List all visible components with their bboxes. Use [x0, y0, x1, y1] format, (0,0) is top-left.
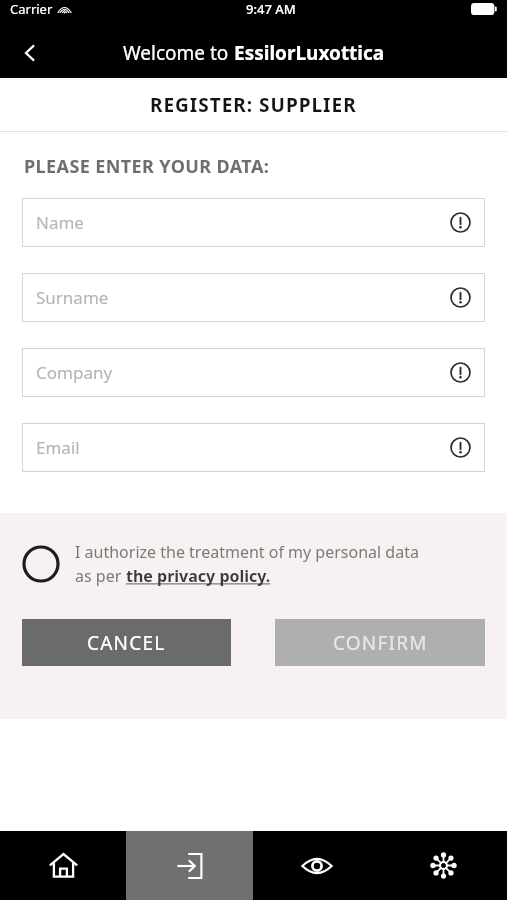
staticText: Company — [36, 361, 113, 384]
staticText: Name — [36, 211, 84, 234]
button[interactable]: Surname — [22, 273, 485, 322]
button[interactable]: View — [253, 831, 380, 900]
button[interactable]: CONFIRM — [275, 619, 485, 666]
staticText: CONFIRM — [333, 630, 428, 656]
staticText: CANCEL — [87, 630, 166, 656]
button[interactable]: CANCEL — [22, 619, 231, 666]
staticText: as per — [75, 565, 126, 587]
button[interactable]: Network — [380, 831, 507, 900]
button[interactable]: Company — [22, 348, 485, 397]
staticText: Email — [36, 436, 80, 459]
button[interactable]: Email — [22, 423, 485, 472]
staticText: Carrier — [10, 0, 53, 18]
button[interactable]: Login — [126, 831, 253, 900]
button[interactable]: Home — [0, 831, 126, 900]
button[interactable]: Back — [8, 31, 52, 75]
button[interactable]: the privacy policy. — [126, 565, 271, 587]
button[interactable]: I authorize the treatment of my personal… — [22, 541, 485, 587]
staticText: Welcome to — [123, 40, 234, 66]
staticText: REGISTER: SUPPLIER — [150, 92, 357, 118]
button[interactable]: Name — [22, 198, 485, 247]
staticText: EssilorLuxottica — [234, 40, 385, 66]
staticText: Surname — [36, 286, 109, 309]
staticText: I authorize the treatment of my personal… — [75, 541, 419, 563]
staticText: 9:47 AM — [246, 0, 296, 18]
staticText: PLEASE ENTER YOUR DATA: — [24, 154, 270, 179]
